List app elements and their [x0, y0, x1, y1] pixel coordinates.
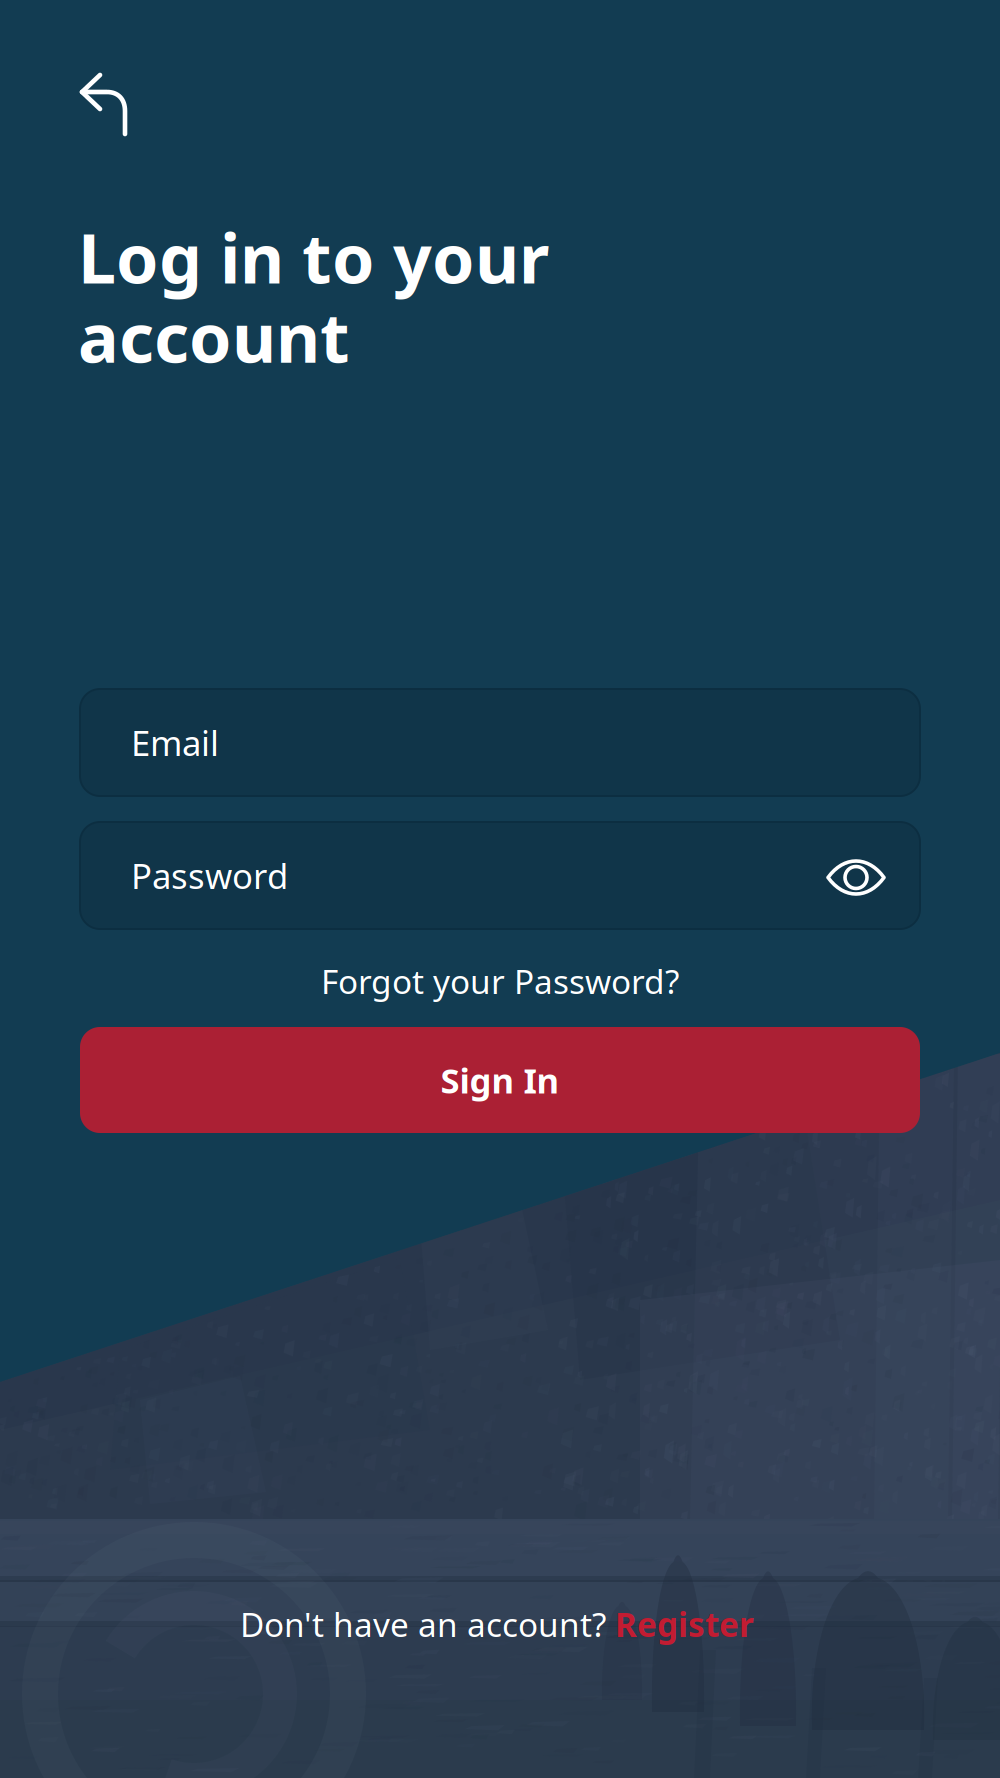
staticText: Email: [131, 719, 219, 765]
button[interactable]: Show password: [826, 857, 886, 893]
staticText: Don't have an account?: [240, 1602, 615, 1646]
staticText: Password: [131, 852, 288, 898]
staticText: Forgot your Password?: [321, 959, 679, 1003]
staticText: Sign In: [440, 1057, 559, 1103]
staticText: account: [78, 291, 350, 382]
button[interactable]: Register: [615, 1602, 754, 1646]
button[interactable]: Back: [52, 54, 156, 158]
button[interactable]: Forgot your Password?: [80, 950, 920, 1012]
staticText: Log in to your: [78, 212, 549, 302]
staticText: Register: [615, 1602, 754, 1646]
button[interactable]: Sign In: [80, 1027, 920, 1133]
